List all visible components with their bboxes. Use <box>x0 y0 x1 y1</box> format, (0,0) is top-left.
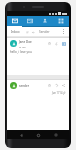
staticText: Sender <box>39 30 50 34</box>
button[interactable]: More options <box>61 29 66 34</box>
button[interactable]: Messages <box>7 16 22 26</box>
button[interactable]: Star <box>47 41 52 46</box>
button[interactable]: Profile <box>37 16 53 26</box>
staticText: to me <box>19 45 26 48</box>
button[interactable]: sender <box>7 79 69 97</box>
button[interactable]: Recents <box>52 131 60 139</box>
button[interactable]: Reply <box>61 41 66 46</box>
button[interactable]: Reply <box>31 30 35 34</box>
button[interactable]: Reply <box>54 83 59 88</box>
staticText: sender <box>19 84 29 88</box>
button[interactable]: Inbox <box>10 29 21 35</box>
staticText: Jane Doe <box>19 40 32 44</box>
button[interactable]: Sort <box>25 30 29 34</box>
button[interactable]: Jane Doe <box>7 37 69 75</box>
button[interactable]: Back <box>17 131 25 139</box>
button[interactable]: Home <box>34 131 42 139</box>
button[interactable]: Attachment <box>54 41 59 46</box>
button[interactable]: Contacts <box>22 16 37 26</box>
button[interactable]: Sender <box>38 29 51 35</box>
button[interactable]: More <box>53 16 69 26</box>
staticText: Jun 17 (4 y) <box>52 91 66 95</box>
staticText: Inbox <box>11 30 20 34</box>
button[interactable]: Star <box>47 83 52 88</box>
button[interactable]: Share <box>61 83 66 88</box>
staticText: hello, i love you <box>10 50 32 54</box>
